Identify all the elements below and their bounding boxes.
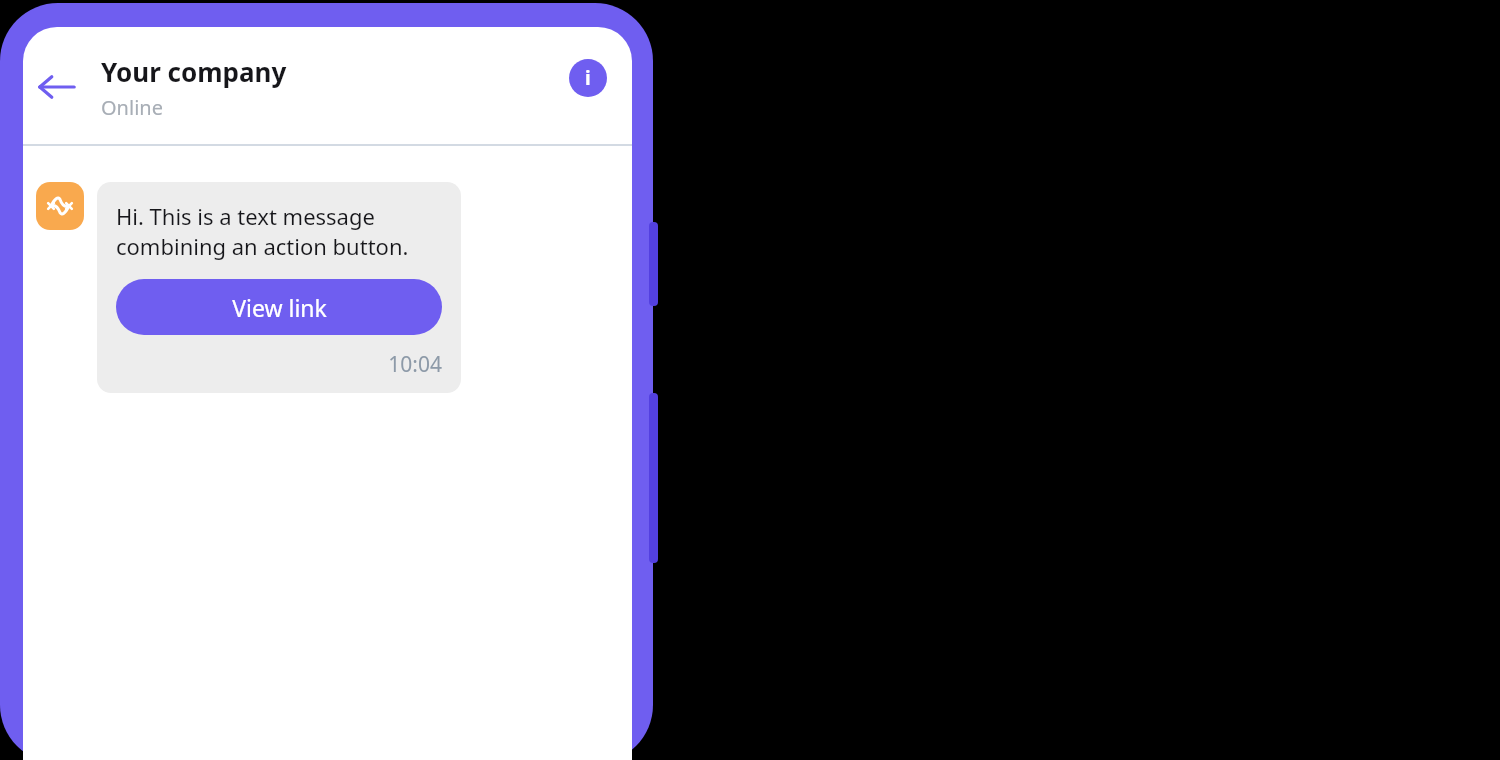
staticText: Hi. This is a text message combining an … — [116, 201, 409, 262]
staticText: i — [585, 65, 591, 91]
staticText: Online — [101, 94, 163, 121]
button[interactable]: Company avatar — [36, 182, 84, 230]
staticText: Your company — [101, 54, 287, 89]
staticText: 10:04 — [116, 350, 442, 379]
other: Power button — [649, 393, 658, 563]
button[interactable]: View link — [116, 279, 442, 335]
button[interactable]: Back — [31, 61, 83, 113]
other: Volume button — [649, 222, 658, 306]
staticText: View link — [232, 292, 327, 323]
button[interactable]: Information — [569, 59, 607, 97]
